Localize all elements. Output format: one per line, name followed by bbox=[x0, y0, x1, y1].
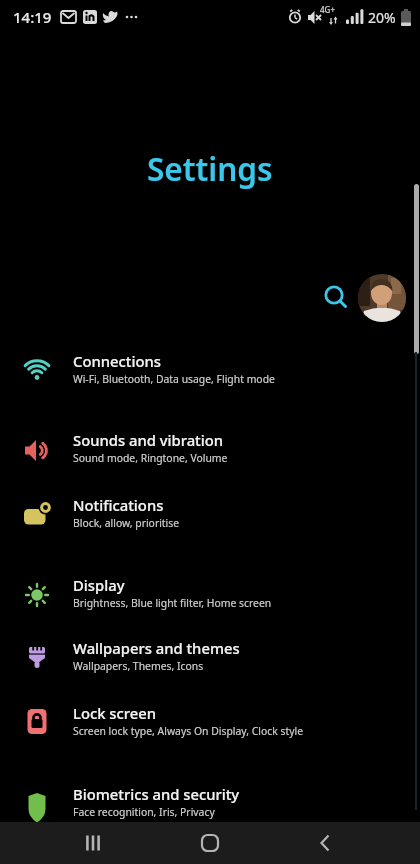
staticText: Wallpapers and themes bbox=[73, 638, 240, 658]
staticText: Wi-Fi, Bluetooth, Data usage, Flight mod… bbox=[73, 372, 275, 386]
staticText: 20% bbox=[368, 8, 396, 27]
button[interactable] bbox=[295, 822, 355, 864]
staticText: Wallpapers, Themes, Icons bbox=[73, 659, 204, 673]
button[interactable]: Biometrics and security bbox=[0, 781, 420, 827]
button[interactable] bbox=[180, 822, 240, 864]
staticText: Connections bbox=[73, 351, 161, 371]
button[interactable] bbox=[318, 280, 354, 316]
staticText: Display bbox=[73, 575, 125, 595]
staticText: Lock screen bbox=[73, 703, 157, 723]
button[interactable] bbox=[63, 822, 123, 864]
button[interactable]: Notifications bbox=[0, 492, 420, 538]
staticText: Settings bbox=[147, 147, 273, 190]
staticText: Block, allow, prioritise bbox=[73, 516, 180, 530]
staticText: Screen lock type, Always On Display, Clo… bbox=[73, 724, 303, 738]
staticText: Sound mode, Ringtone, Volume bbox=[73, 451, 228, 465]
staticText: 4G+ bbox=[320, 4, 335, 15]
button[interactable]: Wallpapers and themes bbox=[0, 635, 420, 681]
button[interactable]: Lock screen bbox=[0, 700, 420, 746]
button[interactable] bbox=[358, 274, 406, 322]
staticText: 14:19 bbox=[13, 7, 52, 27]
button[interactable]: Display bbox=[0, 572, 420, 618]
button[interactable]: Connections bbox=[0, 348, 420, 394]
button[interactable]: Sounds and vibration bbox=[0, 427, 420, 473]
staticText: Sounds and vibration bbox=[73, 430, 224, 450]
staticText: Brightness, Blue light filter, Home scre… bbox=[73, 596, 272, 610]
staticText: Notifications bbox=[73, 495, 164, 515]
staticText: Biometrics and security bbox=[73, 784, 240, 804]
staticText: Face recognition, Iris, Privacy bbox=[73, 805, 215, 819]
